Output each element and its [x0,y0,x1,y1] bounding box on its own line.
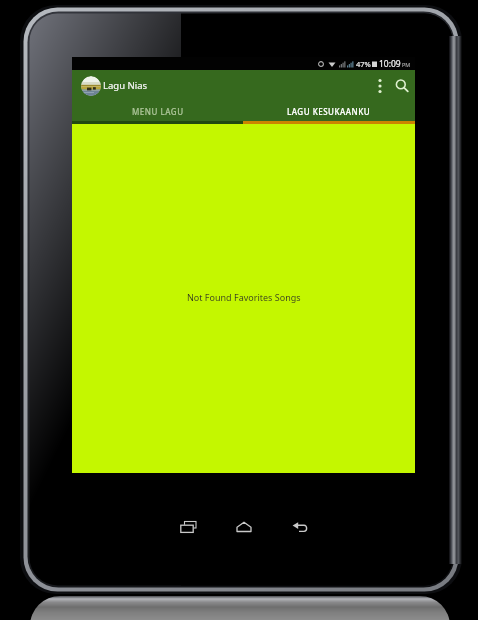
button[interactable]: Recents [168,505,208,549]
staticText: MENU LAGU [132,106,184,117]
button[interactable]: More options [370,70,390,101]
button[interactable]: LAGU KESUKAANKU [243,101,415,121]
button[interactable]: Back [280,505,320,549]
button[interactable]: Home [224,505,264,549]
staticText: LAGU KESUKAANKU [287,106,371,117]
staticText: Lagu Nias [103,79,148,92]
staticText: 47% [356,59,371,69]
button[interactable]: MENU LAGU [72,101,243,121]
button[interactable]: Search [390,70,414,101]
staticText: Not Found Favorites Songs [187,291,301,303]
staticText: PM [402,61,411,68]
staticText: 10:09 [379,58,401,70]
